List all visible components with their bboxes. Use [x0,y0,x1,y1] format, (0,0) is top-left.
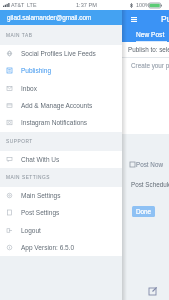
staticText: Done [136,208,152,215]
button[interactable]: New Post [136,31,165,38]
staticText: MAIN TAB [6,33,33,38]
staticText: AT&T [11,2,25,8]
staticText: Social Profiles Live Feeds [21,50,96,57]
staticText: LTE [27,2,37,8]
staticText: MAIN SETTINGS [6,175,51,180]
button[interactable]: Post Settings [0,204,122,221]
button[interactable]: Post Now [130,161,163,168]
button[interactable]: Chat With Us [0,150,122,168]
staticText: Post Now [136,161,163,168]
staticText: Main Settings [21,192,61,199]
staticText: 100% [136,2,150,8]
staticText: Inbox [21,85,37,92]
button[interactable]: App Version: 6.5.0 [0,239,122,256]
staticText: Publish to: select accounts [128,46,169,53]
staticText: 1:37 PM [76,2,97,8]
staticText: Publishing [21,67,51,74]
button[interactable]: Add & Manage Accounts [0,97,122,114]
staticText: Publish [161,14,169,23]
staticText: New Post [136,31,165,38]
staticText: Post Settings [21,209,60,216]
button[interactable]: Main Settings [0,187,122,204]
button[interactable]: Compose new post [145,284,159,298]
staticText: Create your post here [131,62,169,69]
button[interactable]: Inbox [0,80,122,97]
staticText: Add & Manage Accounts [21,102,93,109]
button[interactable]: Logout [0,222,122,239]
staticText: gilad.salamander@gmail.com [7,14,92,21]
staticText: App Version: 6.5.0 [21,244,75,251]
button[interactable]: Social Profiles Live Feeds [0,45,122,62]
button[interactable]: Done [132,206,155,217]
staticText: Logout [21,227,41,234]
button[interactable]: Publishing [0,62,122,79]
staticText: Post Schedule [131,181,169,188]
button[interactable]: Instagram Notifications [0,114,122,131]
button[interactable]: Open navigation menu [128,13,140,25]
staticText: Chat With Us [21,156,60,163]
staticText: Instagram Notifications [21,119,88,126]
staticText: SUPPORT [6,139,33,144]
